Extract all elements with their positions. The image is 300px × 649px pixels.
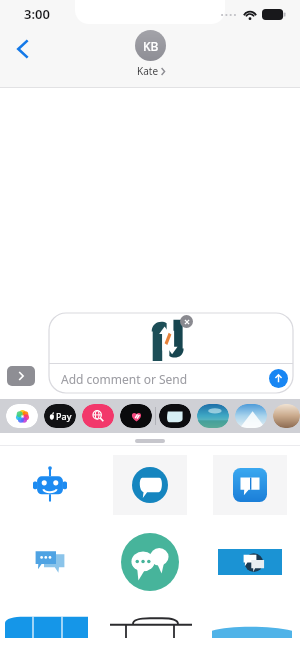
button[interactable] bbox=[200, 523, 300, 600]
button[interactable]: Add comment or Send bbox=[49, 364, 293, 393]
button[interactable]: Apple Pay bbox=[44, 404, 76, 428]
button[interactable]: Send bbox=[269, 369, 288, 388]
button[interactable]: More bbox=[273, 404, 300, 428]
button[interactable] bbox=[100, 600, 200, 649]
button[interactable]: KB bbox=[135, 30, 166, 78]
staticText: Kate bbox=[137, 64, 159, 78]
button[interactable]: Stickers bbox=[159, 404, 191, 428]
button[interactable]: Sky photo bbox=[235, 404, 267, 428]
button[interactable]: Remove sticker bbox=[180, 315, 193, 328]
button[interactable] bbox=[100, 446, 200, 523]
button[interactable]: Music bbox=[120, 404, 152, 428]
staticText: KB bbox=[143, 38, 159, 54]
button[interactable] bbox=[0, 523, 100, 600]
button[interactable] bbox=[0, 600, 100, 649]
staticText: Add comment or Send bbox=[61, 371, 269, 387]
button[interactable]: Images bbox=[82, 404, 114, 428]
button[interactable] bbox=[200, 446, 300, 523]
button[interactable]: Back bbox=[6, 32, 40, 66]
button[interactable]: Expand apps bbox=[7, 366, 35, 386]
staticText: 3:00 bbox=[24, 5, 50, 23]
button[interactable] bbox=[0, 446, 100, 523]
button[interactable]: Photos bbox=[6, 404, 38, 428]
staticText: Pay bbox=[56, 410, 72, 422]
button[interactable] bbox=[100, 523, 200, 600]
button[interactable]: Ocean photo bbox=[197, 404, 229, 428]
button[interactable] bbox=[200, 600, 300, 649]
